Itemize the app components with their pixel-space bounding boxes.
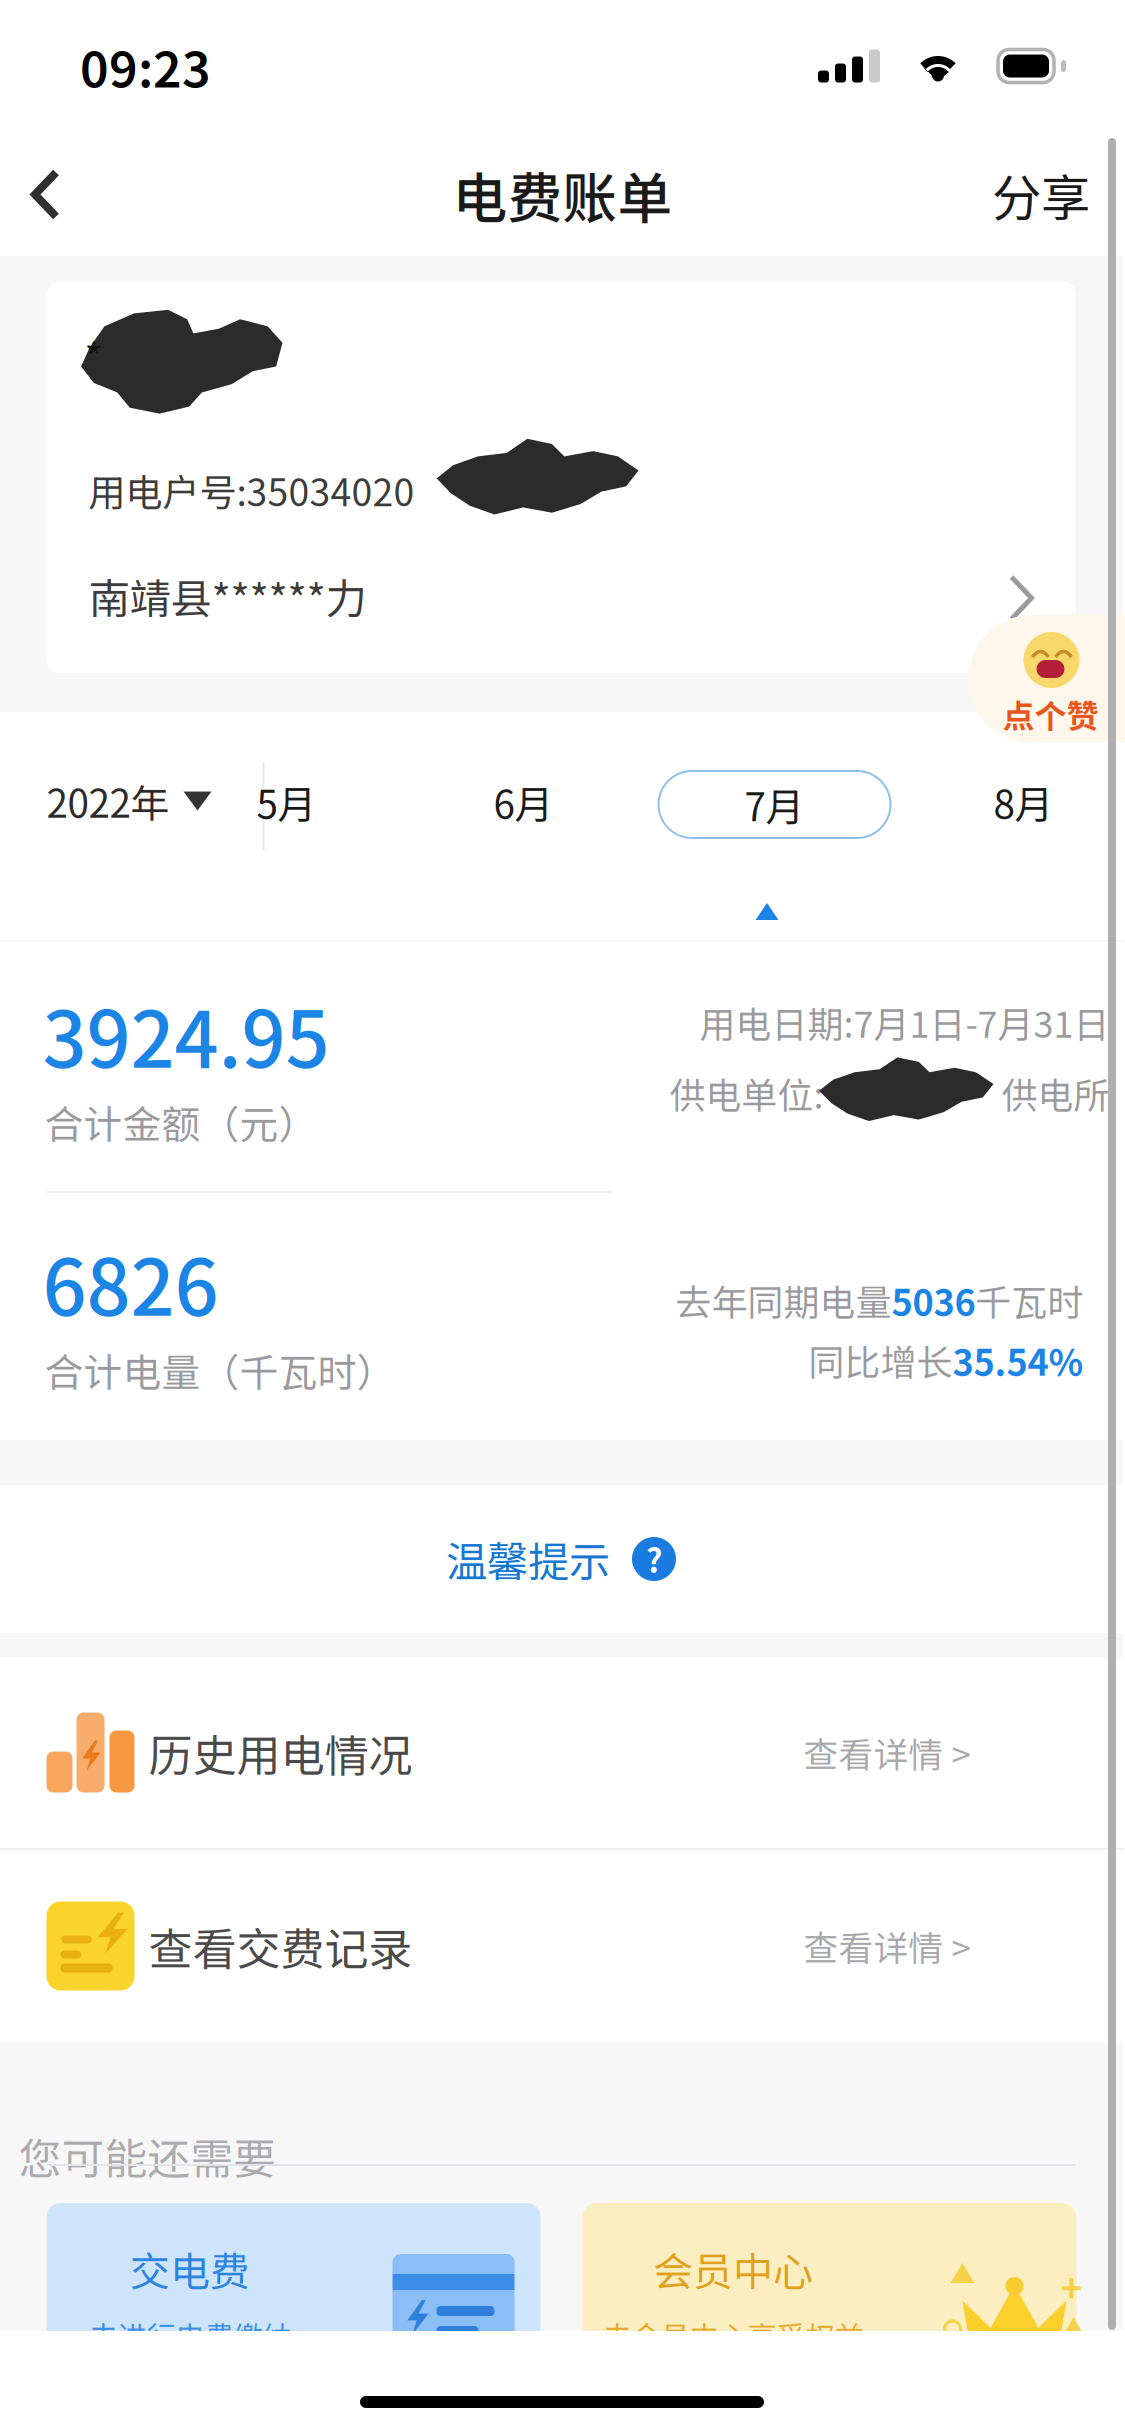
button[interactable]: * — [46, 282, 1075, 673]
staticText: 交电费 — [130, 2240, 250, 2298]
button[interactable]: 7月 — [658, 771, 890, 838]
staticText: 3924.95 — [42, 978, 329, 1090]
staticText: 查看详情 > — [803, 1727, 970, 1778]
button[interactable]: 6月 — [443, 744, 603, 860]
staticText: 用电户号:35034020 — [88, 463, 414, 517]
button[interactable]: 8月 — [943, 744, 1103, 860]
staticText: 7月 — [744, 776, 804, 832]
staticText: 用电日期:7月1日-7月31日 — [699, 996, 1109, 1048]
staticText: 会员中心 — [653, 2240, 813, 2298]
staticText: 千瓦时 — [975, 1274, 1083, 1326]
staticText: 同比增长 — [808, 1334, 952, 1386]
staticText: 6826 — [42, 1226, 218, 1338]
button[interactable]: 温馨提示 — [0, 1485, 1123, 1633]
staticText: 电费账单 — [452, 155, 672, 234]
staticText: 合计金额（元） — [44, 1094, 317, 1150]
button[interactable]: Back — [0, 140, 98, 248]
staticText: * — [84, 326, 103, 384]
staticText: + — [1060, 2259, 1082, 2313]
staticText: 供电单位: — [669, 1067, 823, 1119]
staticText: 南靖县******力 — [88, 566, 366, 626]
button[interactable]: 历史用电情况 — [0, 1657, 1123, 1848]
staticText: 查看详情 > — [803, 1921, 970, 1971]
staticText: 供电所 — [1001, 1067, 1109, 1119]
button[interactable]: 分享 — [956, 129, 1125, 260]
button[interactable]: 交电费 — [46, 2203, 540, 2393]
staticText: 查看交费记录 — [148, 1914, 412, 1978]
staticText: 5036 — [891, 1274, 975, 1326]
staticText: 8月 — [993, 774, 1053, 830]
staticText: 6月 — [493, 774, 553, 830]
staticText: 2022年 — [46, 773, 169, 829]
staticText: 合计电量（千瓦时） — [44, 1342, 395, 1398]
staticText: 分享 — [992, 159, 1090, 230]
staticText: 去会员中心享受权益 — [602, 2314, 863, 2356]
button[interactable]: 点个赞 — [968, 615, 1125, 743]
staticText: ? — [646, 1536, 662, 1582]
button[interactable]: 2022年 — [0, 712, 262, 890]
button[interactable]: 查看交费记录 — [0, 1850, 1123, 2042]
staticText: 您可能还需要 — [18, 2125, 276, 2187]
staticText: 历史用电情况 — [148, 1721, 412, 1784]
staticText: 35.54% — [952, 1334, 1083, 1386]
staticText: 温馨提示 — [446, 1529, 610, 1589]
staticText: 去年同期电量 — [675, 1274, 891, 1326]
staticText: 点个赞 — [1002, 691, 1098, 737]
staticText: 5月 — [256, 774, 316, 830]
button[interactable]: 会员中心 — [582, 2203, 1076, 2393]
staticText: 去进行电费缴纳 — [88, 2314, 291, 2356]
button[interactable]: 5月 — [206, 744, 366, 860]
staticText: 09:23 — [80, 30, 211, 102]
